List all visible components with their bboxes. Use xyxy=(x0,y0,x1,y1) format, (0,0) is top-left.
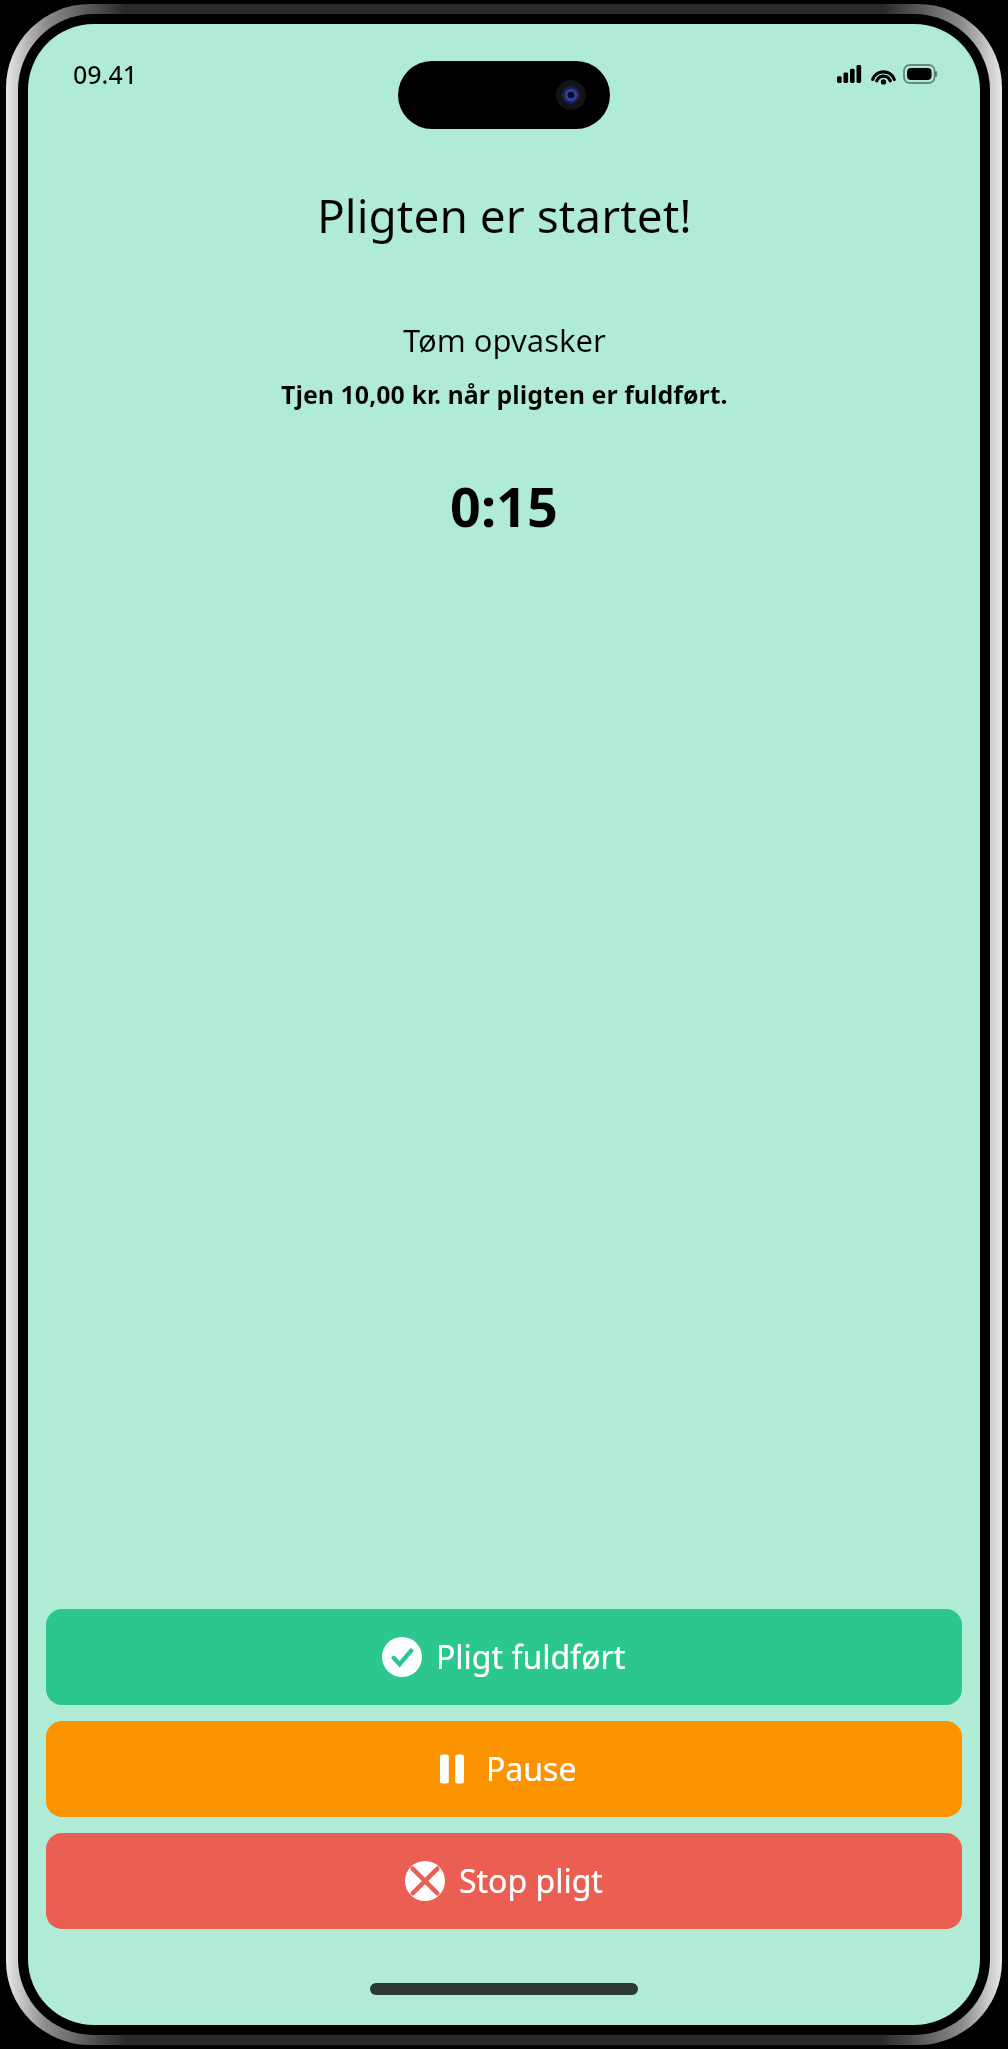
button[interactable]: Stop pligt xyxy=(46,1833,962,1929)
staticText: Tøm opvasker xyxy=(403,319,606,361)
staticText: Pause xyxy=(486,1747,577,1791)
button[interactable]: Pause xyxy=(46,1721,962,1817)
staticText: Tjen 10,00 kr. når pligten er fuldført. xyxy=(281,377,728,411)
staticText: Stop pligt xyxy=(459,1859,603,1903)
staticText: Pligt fuldført xyxy=(436,1635,626,1679)
button[interactable]: Pligt fuldført xyxy=(46,1609,962,1705)
staticText: Pligten er startet! xyxy=(317,184,692,247)
staticText: 0:15 xyxy=(450,469,558,543)
staticText: 09.41 xyxy=(73,57,138,91)
